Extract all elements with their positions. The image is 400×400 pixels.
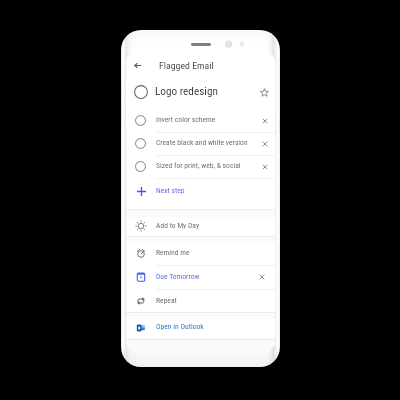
staticText: Create black and white version (156, 138, 248, 147)
staticText: Repeat (156, 296, 177, 305)
button[interactable] (126, 155, 275, 178)
button[interactable]: Back (126, 54, 148, 76)
button[interactable]: Remove due date (255, 270, 269, 284)
staticText: Sized for print, web, & social (156, 161, 241, 170)
button[interactable] (126, 132, 275, 155)
staticText: Invert color scheme (156, 115, 216, 124)
button[interactable]: Remove Sized for print, web, & social (258, 160, 272, 174)
staticText: Logo redesign (155, 85, 218, 98)
button[interactable]: Flag important (255, 83, 273, 101)
staticText: Add to My Day (156, 221, 200, 230)
button[interactable] (126, 80, 275, 109)
button[interactable] (126, 109, 275, 132)
staticText: Due Tomorrow (156, 272, 200, 281)
staticText: Next step (156, 186, 185, 195)
button[interactable] (126, 243, 275, 266)
staticText: Remind me (156, 248, 190, 257)
button[interactable] (126, 319, 275, 340)
button[interactable] (126, 178, 275, 208)
button[interactable] (126, 290, 275, 313)
button[interactable]: Remove Invert color scheme (258, 114, 272, 128)
staticText: Flagged Email (159, 60, 214, 72)
button[interactable] (126, 266, 275, 290)
button[interactable]: Remove Create black and white version (258, 137, 272, 151)
button[interactable] (126, 217, 275, 236)
staticText: Open in Outlook (156, 322, 204, 331)
